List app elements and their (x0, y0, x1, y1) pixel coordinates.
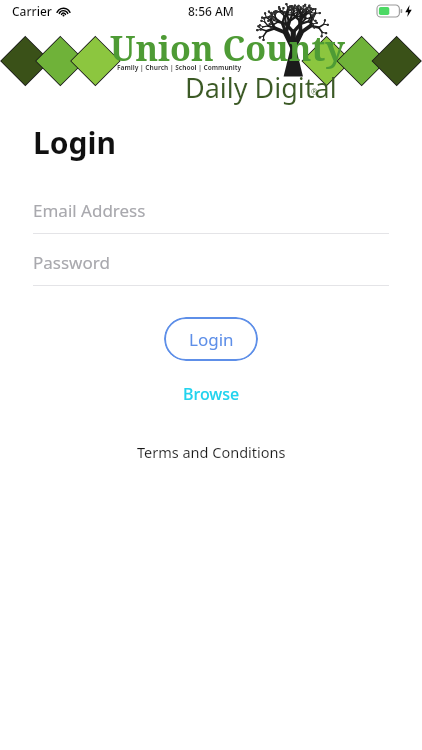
staticText: Daily Digital (185, 69, 337, 106)
staticText: Family | Church | School | Community (117, 63, 242, 72)
staticText: Login (189, 328, 234, 351)
button[interactable]: Email Address (33, 199, 389, 234)
staticText: Browse (183, 383, 240, 405)
staticText: Login (33, 122, 116, 163)
staticText: Email Address (33, 199, 146, 222)
staticText: ® (311, 86, 318, 97)
staticText: Password (33, 251, 110, 274)
button[interactable]: Terms and Conditions (117, 436, 306, 468)
staticText: 8:56 AM (188, 3, 234, 19)
button[interactable]: Password (33, 251, 389, 286)
button[interactable]: Browse (163, 377, 260, 411)
other: Wi-Fi (57, 5, 70, 18)
button[interactable]: Login (164, 317, 258, 361)
staticText: Terms and Conditions (137, 442, 286, 462)
staticText: Carrier (12, 3, 52, 19)
staticText: Union County (110, 25, 345, 71)
other: Battery (377, 5, 403, 17)
